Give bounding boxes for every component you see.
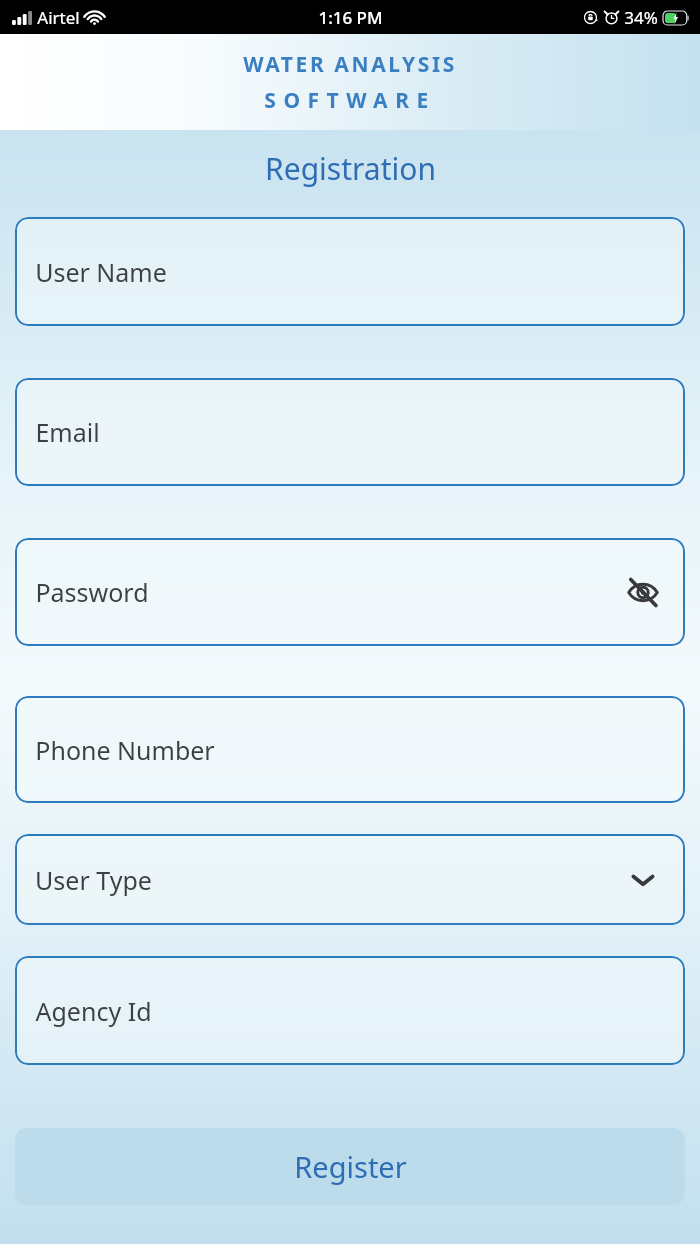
button[interactable]: Agency Id — [15, 956, 685, 1065]
button[interactable]: Show password — [621, 570, 665, 614]
button[interactable]: Open user type dropdown — [621, 858, 665, 902]
staticText: Password — [35, 575, 149, 609]
button[interactable]: Email — [15, 378, 685, 486]
staticText: Registration — [265, 148, 436, 189]
staticText: Register — [294, 1147, 407, 1186]
staticText: Airtel — [37, 6, 80, 29]
staticText: Agency Id — [35, 994, 152, 1028]
staticText: SOFTWARE — [264, 86, 436, 115]
staticText: User Type — [35, 863, 152, 897]
button[interactable]: User Type — [15, 834, 685, 925]
staticText: 1:16 PM — [318, 6, 383, 29]
staticText: Email — [35, 415, 100, 449]
staticText: Phone Number — [35, 733, 215, 767]
staticText: WATER ANALYSIS — [243, 50, 457, 79]
staticText: 34% — [624, 6, 658, 29]
button[interactable]: Password — [15, 538, 685, 646]
button[interactable]: Register — [15, 1128, 685, 1205]
button[interactable]: User Name — [15, 217, 685, 326]
staticText: User Name — [35, 255, 167, 289]
button[interactable]: Phone Number — [15, 696, 685, 803]
